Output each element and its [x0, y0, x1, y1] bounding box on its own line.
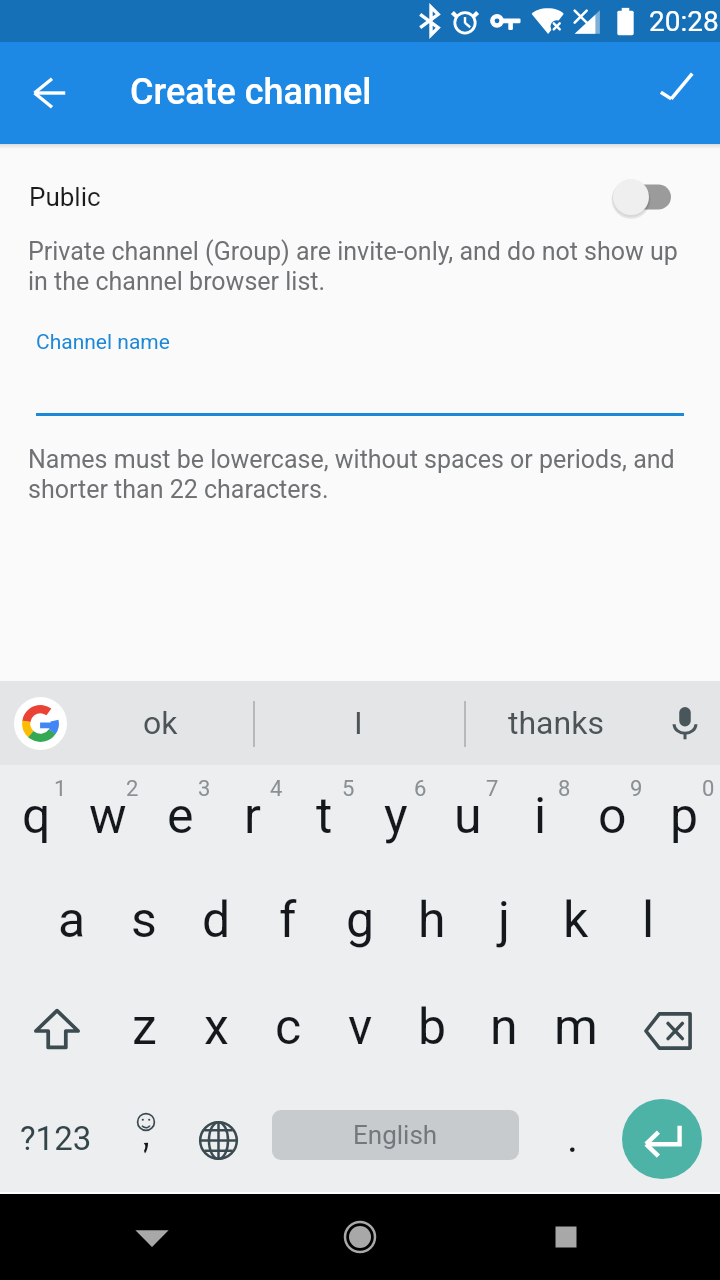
- button[interactable]: Voice input: [650, 681, 720, 765]
- staticText: p: [670, 787, 699, 846]
- staticText: 4: [270, 776, 283, 802]
- staticText: Channel name: [36, 330, 170, 355]
- staticText: ok: [143, 704, 178, 742]
- button[interactable]: c: [252, 979, 324, 1086]
- staticText: .: [567, 1113, 579, 1162]
- staticText: 2: [126, 776, 139, 802]
- button[interactable]: j: [468, 872, 540, 979]
- staticText: 0: [702, 776, 715, 802]
- button[interactable]: l: [612, 872, 684, 979]
- staticText: 5: [342, 776, 355, 802]
- staticText: x: [204, 998, 229, 1057]
- button[interactable]: x: [180, 979, 252, 1086]
- button[interactable]: Back: [126, 1211, 178, 1263]
- staticText: o: [598, 787, 627, 846]
- button[interactable]: Recent apps: [540, 1211, 592, 1263]
- staticText: y: [384, 787, 408, 846]
- button[interactable]: English: [272, 1110, 519, 1160]
- staticText: g: [346, 891, 375, 950]
- staticText: 1: [54, 776, 67, 802]
- staticText: u: [454, 787, 482, 846]
- button[interactable]: I: [263, 681, 453, 765]
- button[interactable]: o: [576, 765, 648, 872]
- button[interactable]: e: [144, 765, 216, 872]
- button[interactable]: a: [36, 872, 108, 979]
- staticText: s: [131, 891, 157, 950]
- button[interactable]: Shift: [0, 979, 108, 1086]
- staticText: a: [58, 891, 86, 950]
- staticText: ?123: [20, 1119, 92, 1158]
- staticText: 8: [558, 776, 571, 802]
- staticText: b: [418, 998, 447, 1057]
- button[interactable]: i: [504, 765, 576, 872]
- button[interactable]: ok: [65, 681, 255, 765]
- staticText: Private channel (Group) are invite-only,…: [28, 237, 698, 296]
- staticText: Public: [29, 182, 101, 212]
- button[interactable]: f: [252, 872, 324, 979]
- button[interactable]: s: [108, 872, 180, 979]
- staticText: 6: [414, 776, 427, 802]
- button[interactable]: ?123: [0, 1086, 112, 1192]
- staticText: c: [275, 998, 302, 1057]
- button[interactable]: q: [0, 765, 72, 872]
- button[interactable]: g: [324, 872, 396, 979]
- button[interactable]: Navigate up: [22, 65, 78, 121]
- staticText: 20:28: [649, 5, 719, 38]
- button[interactable]: Enter: [603, 1086, 720, 1192]
- button[interactable]: Emoji: [112, 1086, 180, 1192]
- staticText: I: [354, 704, 363, 742]
- button[interactable]: v: [324, 979, 396, 1086]
- staticText: q: [22, 787, 51, 846]
- button[interactable]: Home: [334, 1211, 386, 1263]
- staticText: v: [348, 998, 373, 1057]
- staticText: thanks: [508, 704, 604, 742]
- button[interactable]: y: [360, 765, 432, 872]
- button[interactable]: Done: [655, 65, 711, 121]
- staticText: h: [418, 891, 446, 950]
- staticText: r: [244, 787, 261, 846]
- staticText: Names must be lowercase, without spaces …: [28, 445, 698, 504]
- staticText: d: [202, 891, 231, 950]
- button[interactable]: t: [288, 765, 360, 872]
- button[interactable]: Change language: [180, 1086, 256, 1192]
- button[interactable]: thanks: [461, 681, 651, 765]
- staticText: m: [554, 998, 598, 1057]
- button[interactable]: k: [540, 872, 612, 979]
- button[interactable]: h: [396, 872, 468, 979]
- button[interactable]: Public channel toggle, off: [600, 167, 684, 227]
- staticText: e: [167, 787, 194, 846]
- staticText: z: [132, 998, 157, 1057]
- button[interactable]: u: [432, 765, 504, 872]
- staticText: i: [534, 787, 547, 846]
- staticText: 3: [198, 776, 211, 802]
- button[interactable]: w: [72, 765, 144, 872]
- staticText: j: [498, 891, 510, 950]
- staticText: f: [279, 891, 297, 950]
- staticText: 9: [630, 776, 643, 802]
- staticText: Create channel: [130, 71, 372, 113]
- staticText: English: [353, 1120, 438, 1150]
- button[interactable]: Backspace: [612, 979, 720, 1086]
- button[interactable]: .: [531, 1086, 615, 1192]
- button[interactable]: Google Assistant: [14, 697, 67, 750]
- button[interactable]: d: [180, 872, 252, 979]
- button[interactable]: p: [648, 765, 720, 872]
- staticText: k: [563, 891, 589, 950]
- button[interactable]: b: [396, 979, 468, 1086]
- button[interactable]: r: [216, 765, 288, 872]
- button[interactable]: Public: [0, 153, 720, 241]
- button[interactable]: n: [468, 979, 540, 1086]
- staticText: l: [642, 891, 655, 950]
- button[interactable]: m: [540, 979, 612, 1086]
- staticText: t: [316, 787, 333, 846]
- staticText: 7: [486, 776, 499, 802]
- staticText: n: [490, 998, 518, 1057]
- button[interactable]: z: [108, 979, 180, 1086]
- staticText: w: [89, 787, 127, 846]
